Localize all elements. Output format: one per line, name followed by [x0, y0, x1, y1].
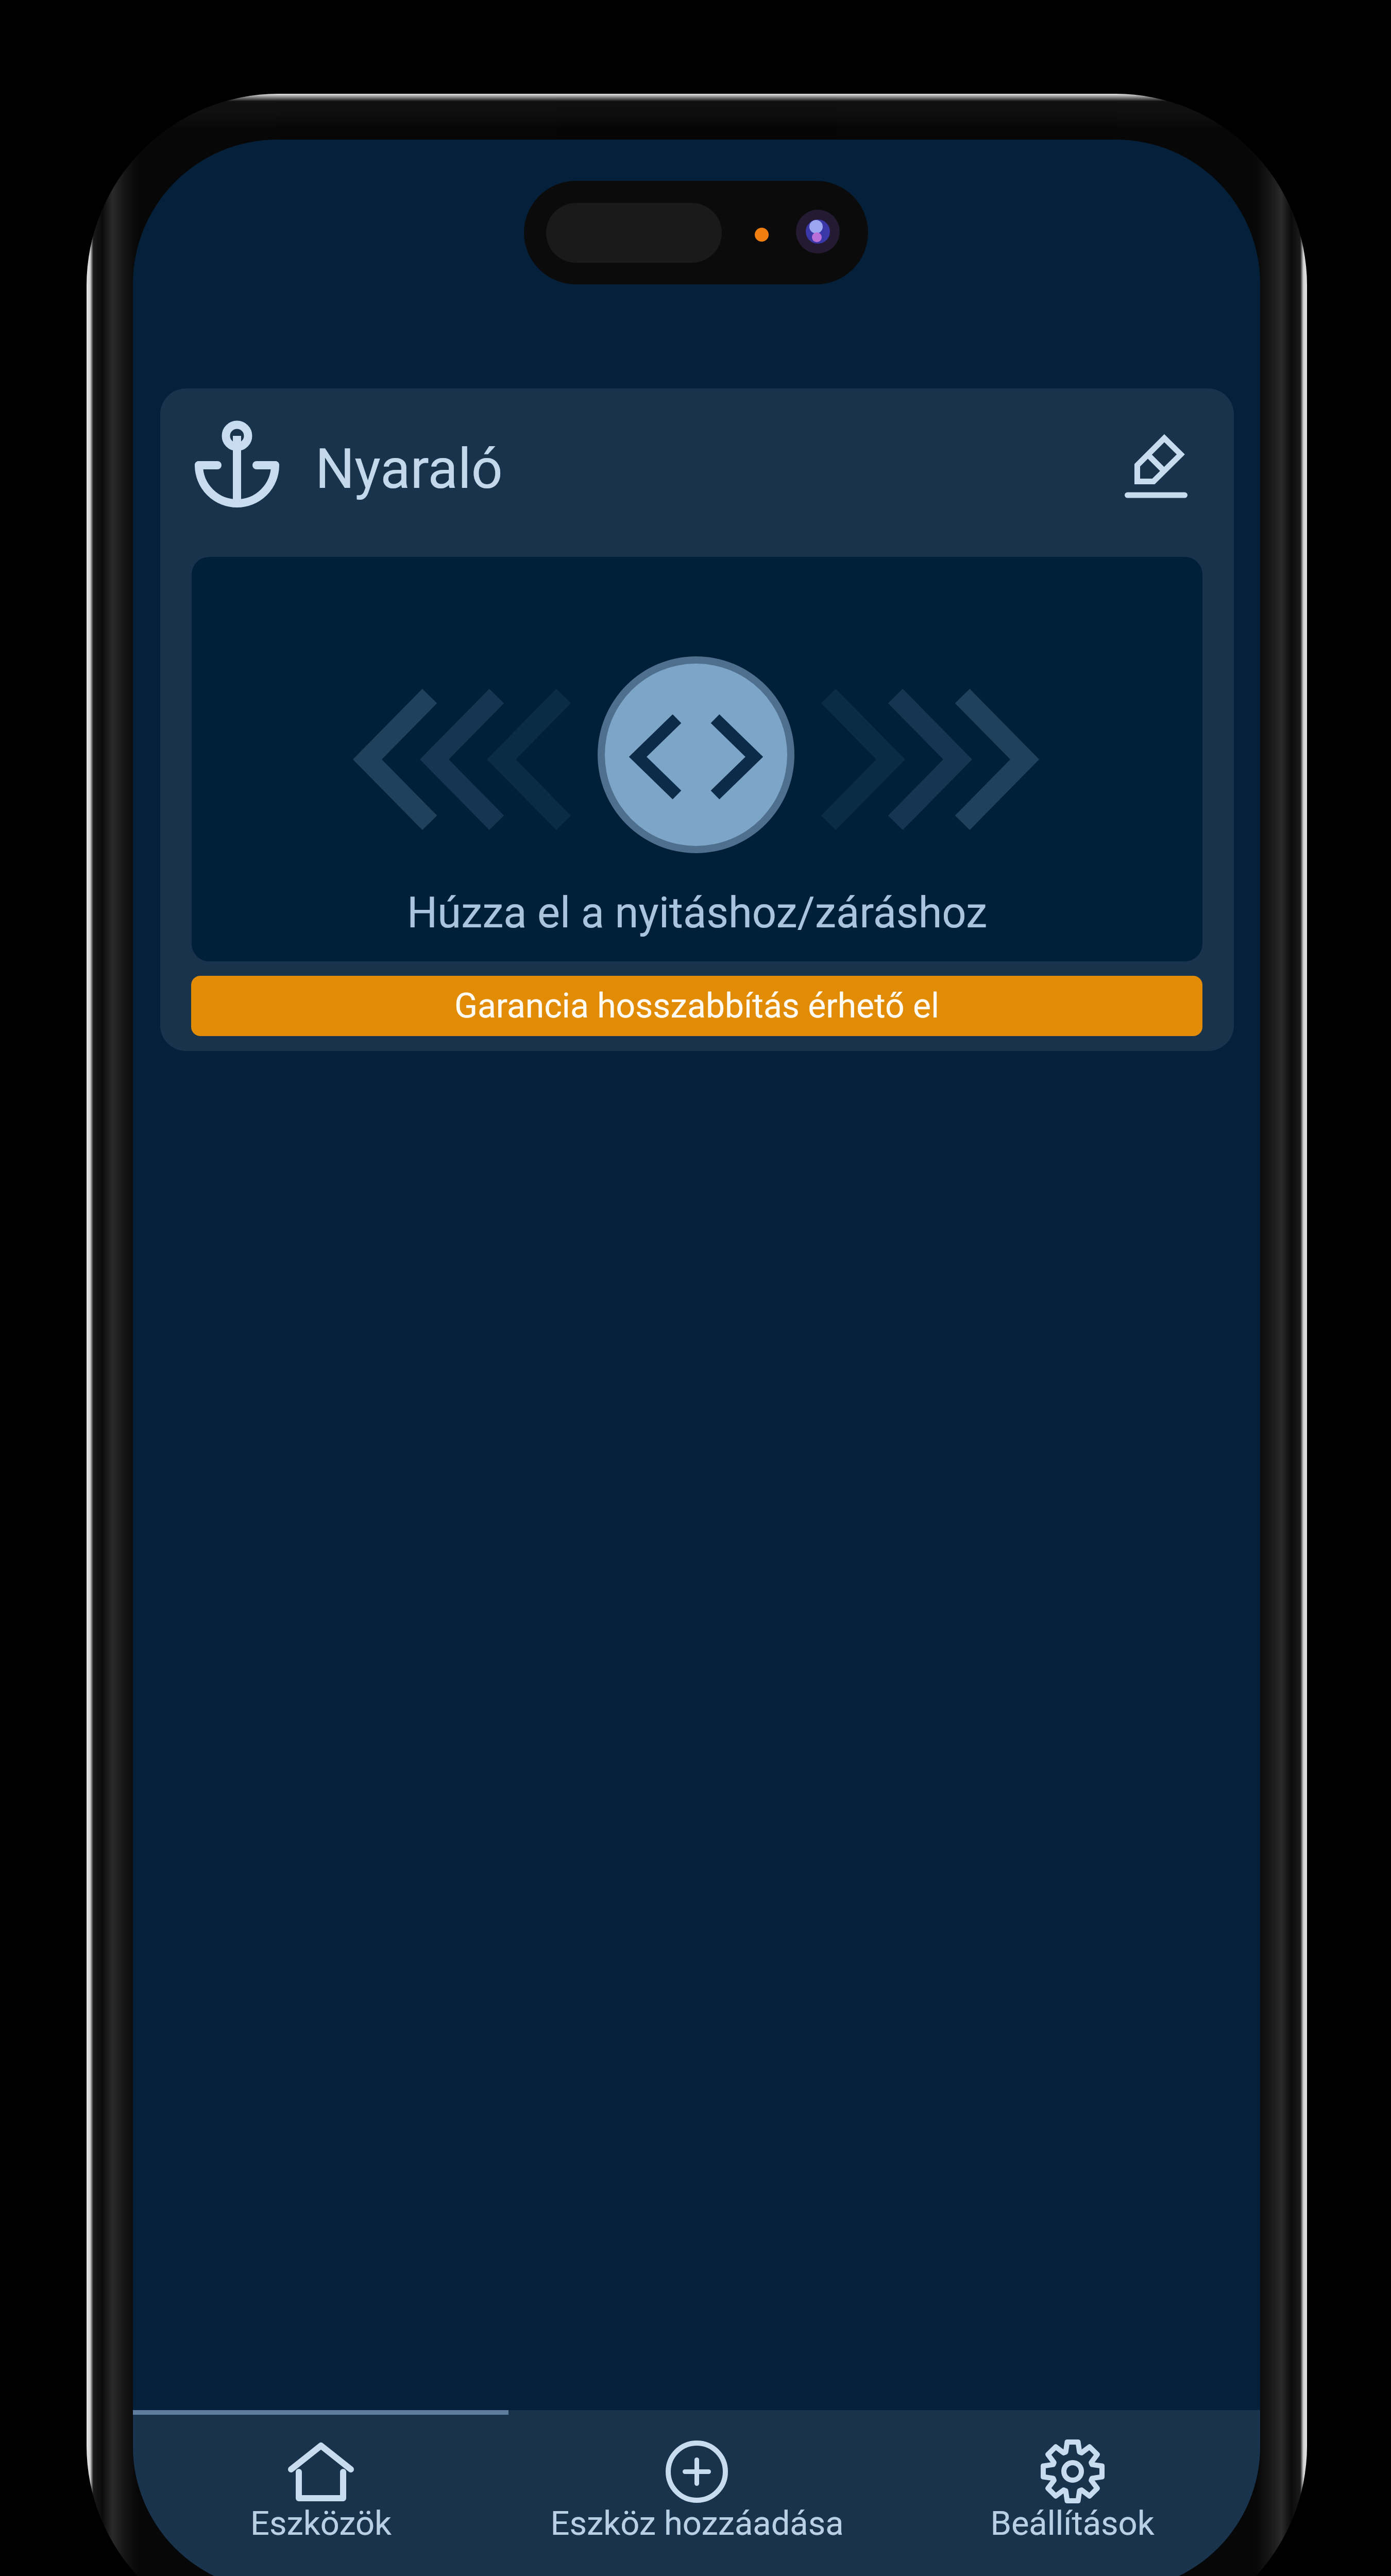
button[interactable]: Húzza el a nyitáshoz/záráshoz [192, 557, 1202, 961]
button[interactable]: Nyaraló [160, 388, 1234, 557]
button[interactable]: Add device [509, 2415, 885, 2576]
staticText: Eszközök [250, 2504, 392, 2543]
button[interactable]: Garancia hosszabbítás érhető el [191, 976, 1202, 1036]
button[interactable]: Edit name [1099, 410, 1213, 524]
button[interactable]: Devices [133, 2415, 509, 2576]
staticText: Garancia hosszabbítás érhető el [454, 986, 940, 1026]
staticText: Eszköz hozzáadása [550, 2504, 844, 2543]
staticText: Beállítások [990, 2504, 1155, 2543]
button[interactable]: Settings [885, 2415, 1260, 2576]
staticText: Nyaraló [315, 437, 503, 501]
staticText: Húzza el a nyitáshoz/záráshoz [407, 888, 988, 938]
